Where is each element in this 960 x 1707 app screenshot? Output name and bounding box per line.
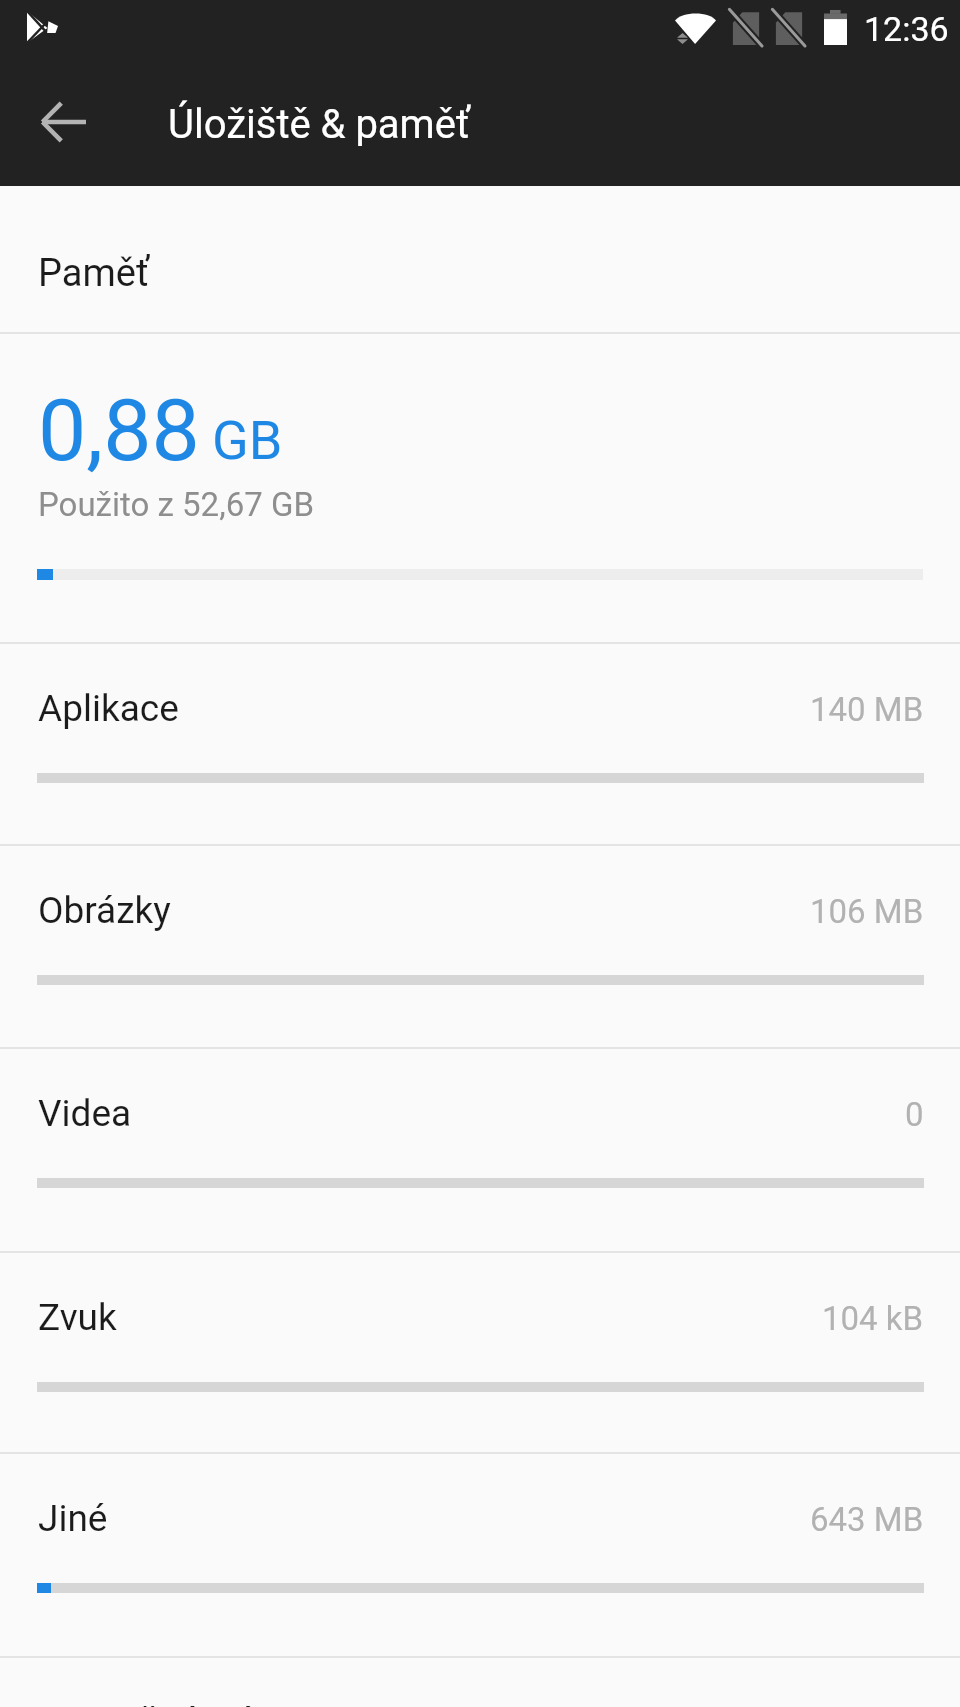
staticText: 106 MB xyxy=(810,892,924,931)
button[interactable]: Jiné xyxy=(0,1452,960,1656)
staticText: Videa xyxy=(38,1092,132,1135)
staticText: Aplikace xyxy=(38,687,179,730)
staticText: 643 MB xyxy=(810,1500,924,1539)
staticText: Úložiště & paměť xyxy=(168,101,470,148)
staticText: 0,88 xyxy=(38,380,200,481)
staticText: Zvuk xyxy=(38,1296,117,1339)
staticText: 140 MB xyxy=(810,690,924,729)
staticText: Paměť xyxy=(38,251,150,296)
button[interactable]: Back xyxy=(28,86,100,158)
staticText: GB xyxy=(212,409,283,472)
staticText: Nevyužité místo xyxy=(38,1700,302,1707)
button[interactable]: Aplikace xyxy=(0,642,960,844)
button[interactable]: 0,88 xyxy=(0,332,960,642)
button[interactable]: Nevyužité místo xyxy=(0,1656,960,1707)
staticText: 104 kB xyxy=(822,1299,924,1338)
staticText: 0 xyxy=(905,1095,924,1134)
staticText: Použito z 52,67 GB xyxy=(38,485,314,524)
staticText: Obrázky xyxy=(38,889,171,932)
button[interactable]: Videa xyxy=(0,1047,960,1251)
staticText: 12:36 xyxy=(864,9,949,49)
staticText: Jiné xyxy=(38,1497,108,1540)
button[interactable]: Zvuk xyxy=(0,1251,960,1452)
button[interactable]: Obrázky xyxy=(0,844,960,1047)
